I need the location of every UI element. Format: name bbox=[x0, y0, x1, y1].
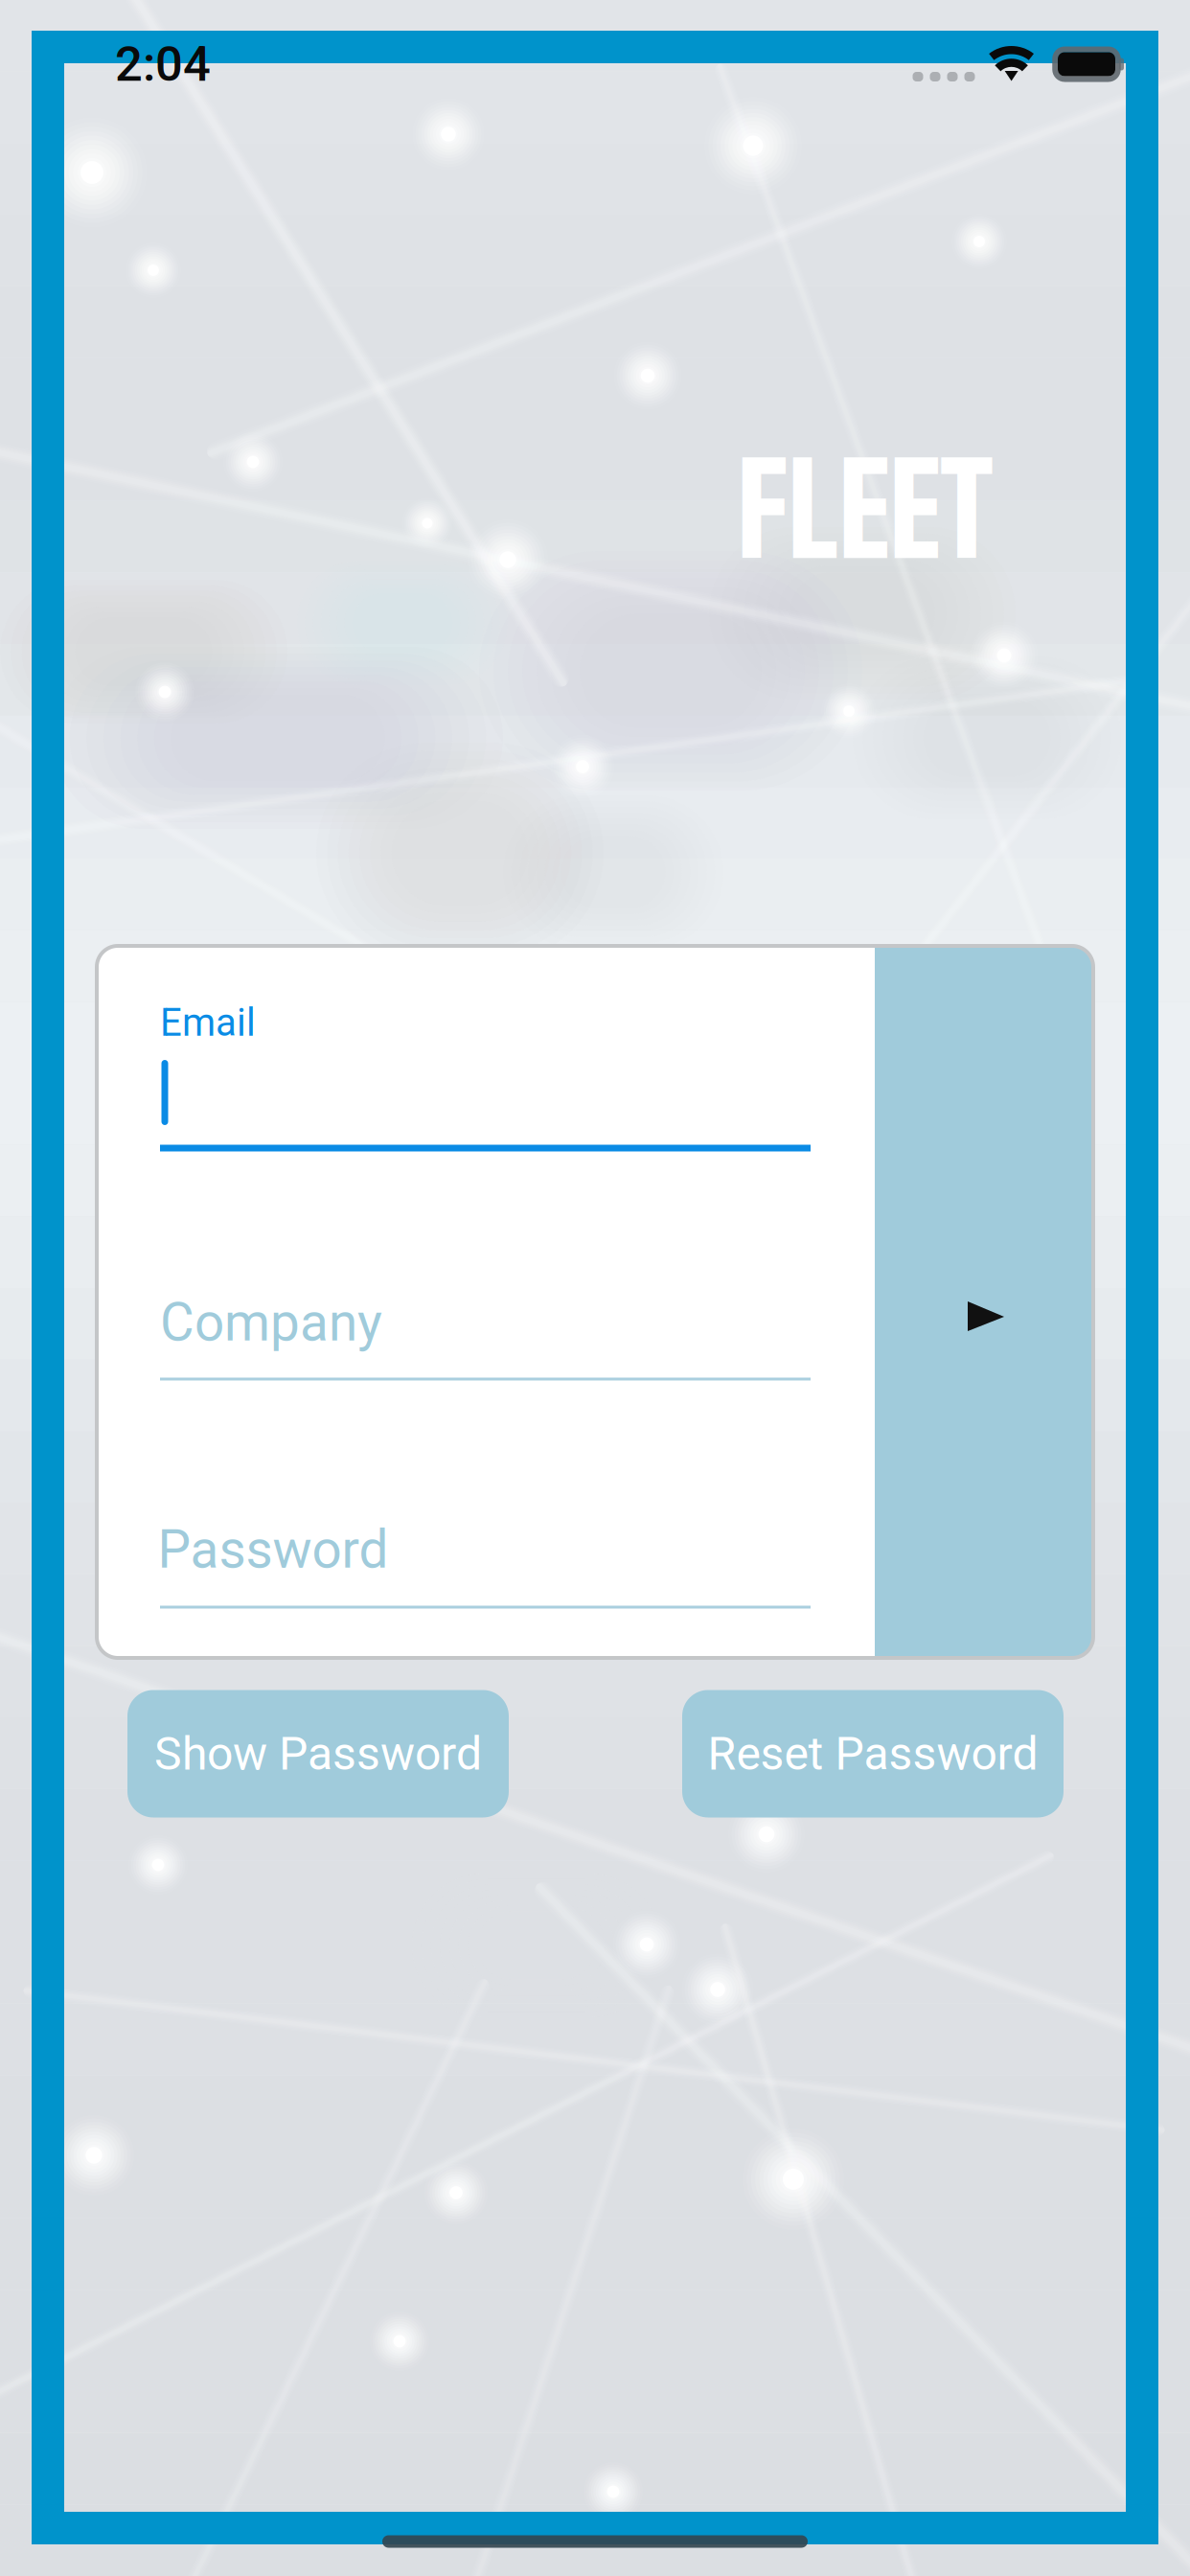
staticText: Show Password bbox=[154, 1727, 482, 1781]
staticText: 2:04 bbox=[115, 36, 211, 93]
staticText: Email bbox=[160, 1000, 256, 1045]
staticText: Company bbox=[160, 1292, 382, 1353]
button[interactable]: Show Password bbox=[127, 1690, 509, 1817]
button[interactable]: Sign in bbox=[875, 946, 1093, 1658]
button[interactable]: Reset Password bbox=[682, 1690, 1064, 1817]
staticText: FLEET bbox=[737, 435, 993, 585]
staticText: Password bbox=[158, 1519, 389, 1580]
staticText: Reset Password bbox=[708, 1727, 1038, 1781]
